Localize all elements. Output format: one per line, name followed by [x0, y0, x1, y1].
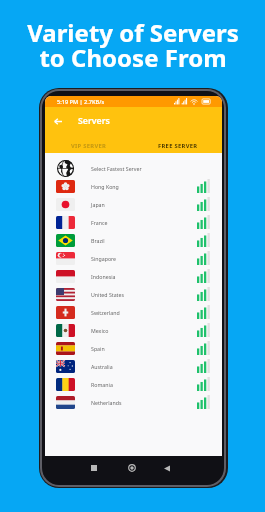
staticText: 5:19 PM | 2.7KB/s	[57, 98, 105, 106]
staticText: Spain	[91, 345, 105, 352]
button[interactable]: Brazil	[45, 231, 222, 249]
staticText: Brazil	[91, 237, 105, 244]
staticText: Romania	[91, 381, 113, 388]
button[interactable]: Singapore	[45, 249, 222, 267]
button[interactable]: Home	[122, 458, 142, 478]
button[interactable]: United States	[45, 285, 222, 303]
staticText: Singapore	[91, 255, 117, 262]
button[interactable]: Netherlands	[45, 393, 222, 411]
button[interactable]: VIP SERVER	[45, 138, 133, 153]
staticText: FREE SERVER	[158, 142, 198, 150]
staticText: Select Fastest Server	[91, 165, 142, 172]
button[interactable]: Spain	[45, 339, 222, 357]
button[interactable]: Switzerland	[45, 303, 222, 321]
button[interactable]: Back	[50, 113, 66, 129]
button[interactable]: Hong Kong	[45, 177, 222, 195]
staticText: Hong Kong	[91, 183, 119, 190]
staticText: Switzerland	[91, 309, 120, 316]
button[interactable]: Indonesia	[45, 267, 222, 285]
button[interactable]: France	[45, 213, 222, 231]
staticText: Servers	[78, 115, 110, 127]
staticText: VIP SERVER	[71, 142, 107, 150]
staticText: United States	[91, 291, 124, 298]
staticText: Variety of Servers	[27, 16, 239, 49]
button[interactable]: Back	[157, 458, 177, 478]
button[interactable]: Recents	[84, 458, 104, 478]
staticText: to Choose From	[39, 41, 227, 74]
button[interactable]: FREE SERVER	[133, 138, 222, 153]
staticText: Australia	[91, 363, 113, 370]
staticText: Mexico	[91, 327, 109, 334]
button[interactable]: Japan	[45, 195, 222, 213]
staticText: Netherlands	[91, 399, 122, 406]
button[interactable]: Australia	[45, 357, 222, 375]
button[interactable]: Select Fastest Server	[45, 159, 222, 177]
button[interactable]: Romania	[45, 375, 222, 393]
button[interactable]: Mexico	[45, 321, 222, 339]
staticText: Japan	[91, 201, 105, 208]
staticText: Indonesia	[91, 273, 116, 280]
staticText: France	[91, 219, 108, 226]
